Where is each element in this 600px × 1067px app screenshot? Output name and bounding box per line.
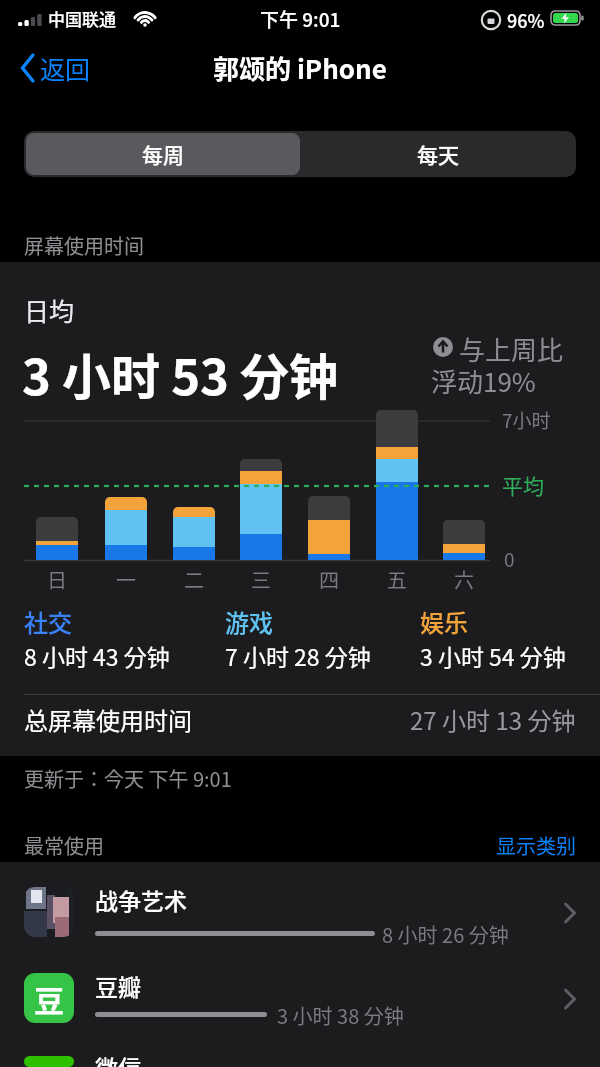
staticText: 最常使用	[24, 831, 104, 860]
staticText: 8 小时 26 分钟	[382, 920, 509, 949]
staticText: 3 小时 54 分钟	[420, 639, 566, 672]
staticText: 3 小时 53 分钟	[22, 338, 339, 409]
staticText: 豆	[34, 977, 64, 1020]
staticText: 日均	[24, 292, 75, 328]
staticText: 二	[184, 565, 204, 594]
staticText: 8 小时 43 分钟	[24, 639, 170, 672]
staticText: 五	[387, 565, 407, 594]
staticText: 每天	[417, 139, 459, 169]
button[interactable]: 豆	[0, 965, 600, 1050]
staticText: 显示类别	[496, 831, 576, 860]
staticText: 总屏幕使用时间	[24, 702, 192, 737]
staticText: 微信	[95, 1050, 141, 1067]
staticText: 四	[319, 565, 339, 594]
staticText: 中国联通	[48, 6, 116, 31]
staticText: 与上周比	[459, 330, 564, 368]
staticText: 每周	[142, 139, 184, 169]
staticText: 六	[454, 565, 474, 594]
staticText: 7小时	[502, 406, 551, 434]
staticText: 郭颂的 iPhone	[213, 49, 387, 87]
button[interactable]: 每天	[300, 131, 576, 177]
button[interactable]: 每周	[26, 133, 300, 175]
staticText: 三	[251, 565, 271, 594]
staticText: 豆瓣	[95, 969, 141, 1002]
staticText: 下午 9:01	[260, 5, 341, 33]
staticText: 平均	[502, 470, 544, 500]
staticText: 一	[116, 565, 136, 594]
button[interactable]: 战争艺术	[0, 880, 600, 965]
staticText: 社交	[24, 604, 72, 639]
button[interactable]: 总屏幕使用时间	[0, 695, 600, 756]
staticText: 浮动19%	[431, 362, 536, 400]
staticText: 游戏	[225, 604, 273, 639]
staticText: 0	[504, 545, 515, 573]
staticText: 屏幕使用时间	[24, 231, 144, 260]
staticText: 96%	[507, 7, 545, 33]
staticText: 7 小时 28 分钟	[225, 639, 371, 672]
button[interactable]: 返回	[12, 48, 112, 88]
button[interactable]: 微信	[0, 1048, 600, 1067]
staticText: 27 小时 13 分钟	[410, 702, 576, 737]
staticText: 返回	[40, 50, 91, 86]
staticText: 更新于：今天 下午 9:01	[24, 764, 232, 793]
button[interactable]: 显示类别	[0, 831, 576, 860]
staticText: 3 小时 38 分钟	[277, 1001, 404, 1030]
staticText: 战争艺术	[95, 883, 187, 916]
staticText: 日	[47, 565, 67, 594]
staticText: 娱乐	[420, 604, 468, 639]
